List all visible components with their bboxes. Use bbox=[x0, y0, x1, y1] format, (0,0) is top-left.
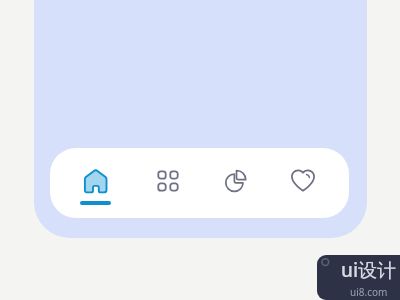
button[interactable]: Statistics bbox=[202, 148, 270, 218]
button[interactable]: Favorites bbox=[269, 148, 337, 218]
button[interactable]: Categories bbox=[134, 148, 202, 218]
other: Categories bbox=[155, 168, 181, 194]
button[interactable]: Home bbox=[61, 148, 129, 218]
staticText: ui设计 bbox=[341, 257, 397, 283]
other: Favorites bbox=[290, 168, 316, 194]
staticText: ui8.com bbox=[350, 285, 388, 299]
other: Home bbox=[82, 168, 108, 194]
other: Statistics bbox=[223, 168, 249, 194]
